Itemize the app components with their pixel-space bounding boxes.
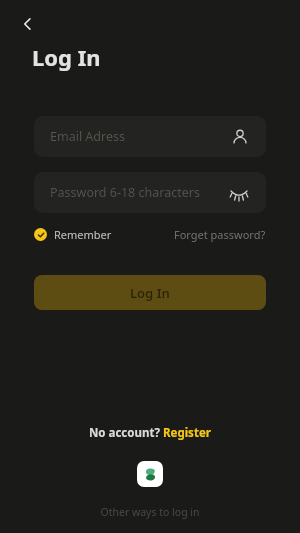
button[interactable]: Remember	[34, 227, 112, 242]
button[interactable]: Forget password?	[174, 227, 266, 242]
button[interactable]: Register	[163, 425, 211, 441]
button[interactable]: Show password	[228, 182, 250, 204]
staticText: Log In	[32, 42, 101, 72]
button[interactable]: Log in with app	[137, 461, 163, 487]
button[interactable]: Email Adress	[34, 116, 266, 157]
staticText: Register	[163, 425, 211, 441]
staticText: Remember	[54, 227, 112, 242]
staticText: No account?	[89, 425, 163, 441]
staticText: Password 6-18 characters	[50, 184, 200, 201]
staticText: Email Adress	[50, 128, 125, 145]
staticText: Log In	[130, 284, 170, 302]
staticText: Other ways to log in	[100, 505, 200, 519]
button[interactable]: Password 6-18 characters	[34, 172, 266, 213]
button[interactable]: Back	[12, 8, 44, 40]
staticText: Forget password?	[174, 227, 266, 242]
button[interactable]: Log In	[34, 275, 266, 310]
other: Account	[230, 127, 250, 147]
